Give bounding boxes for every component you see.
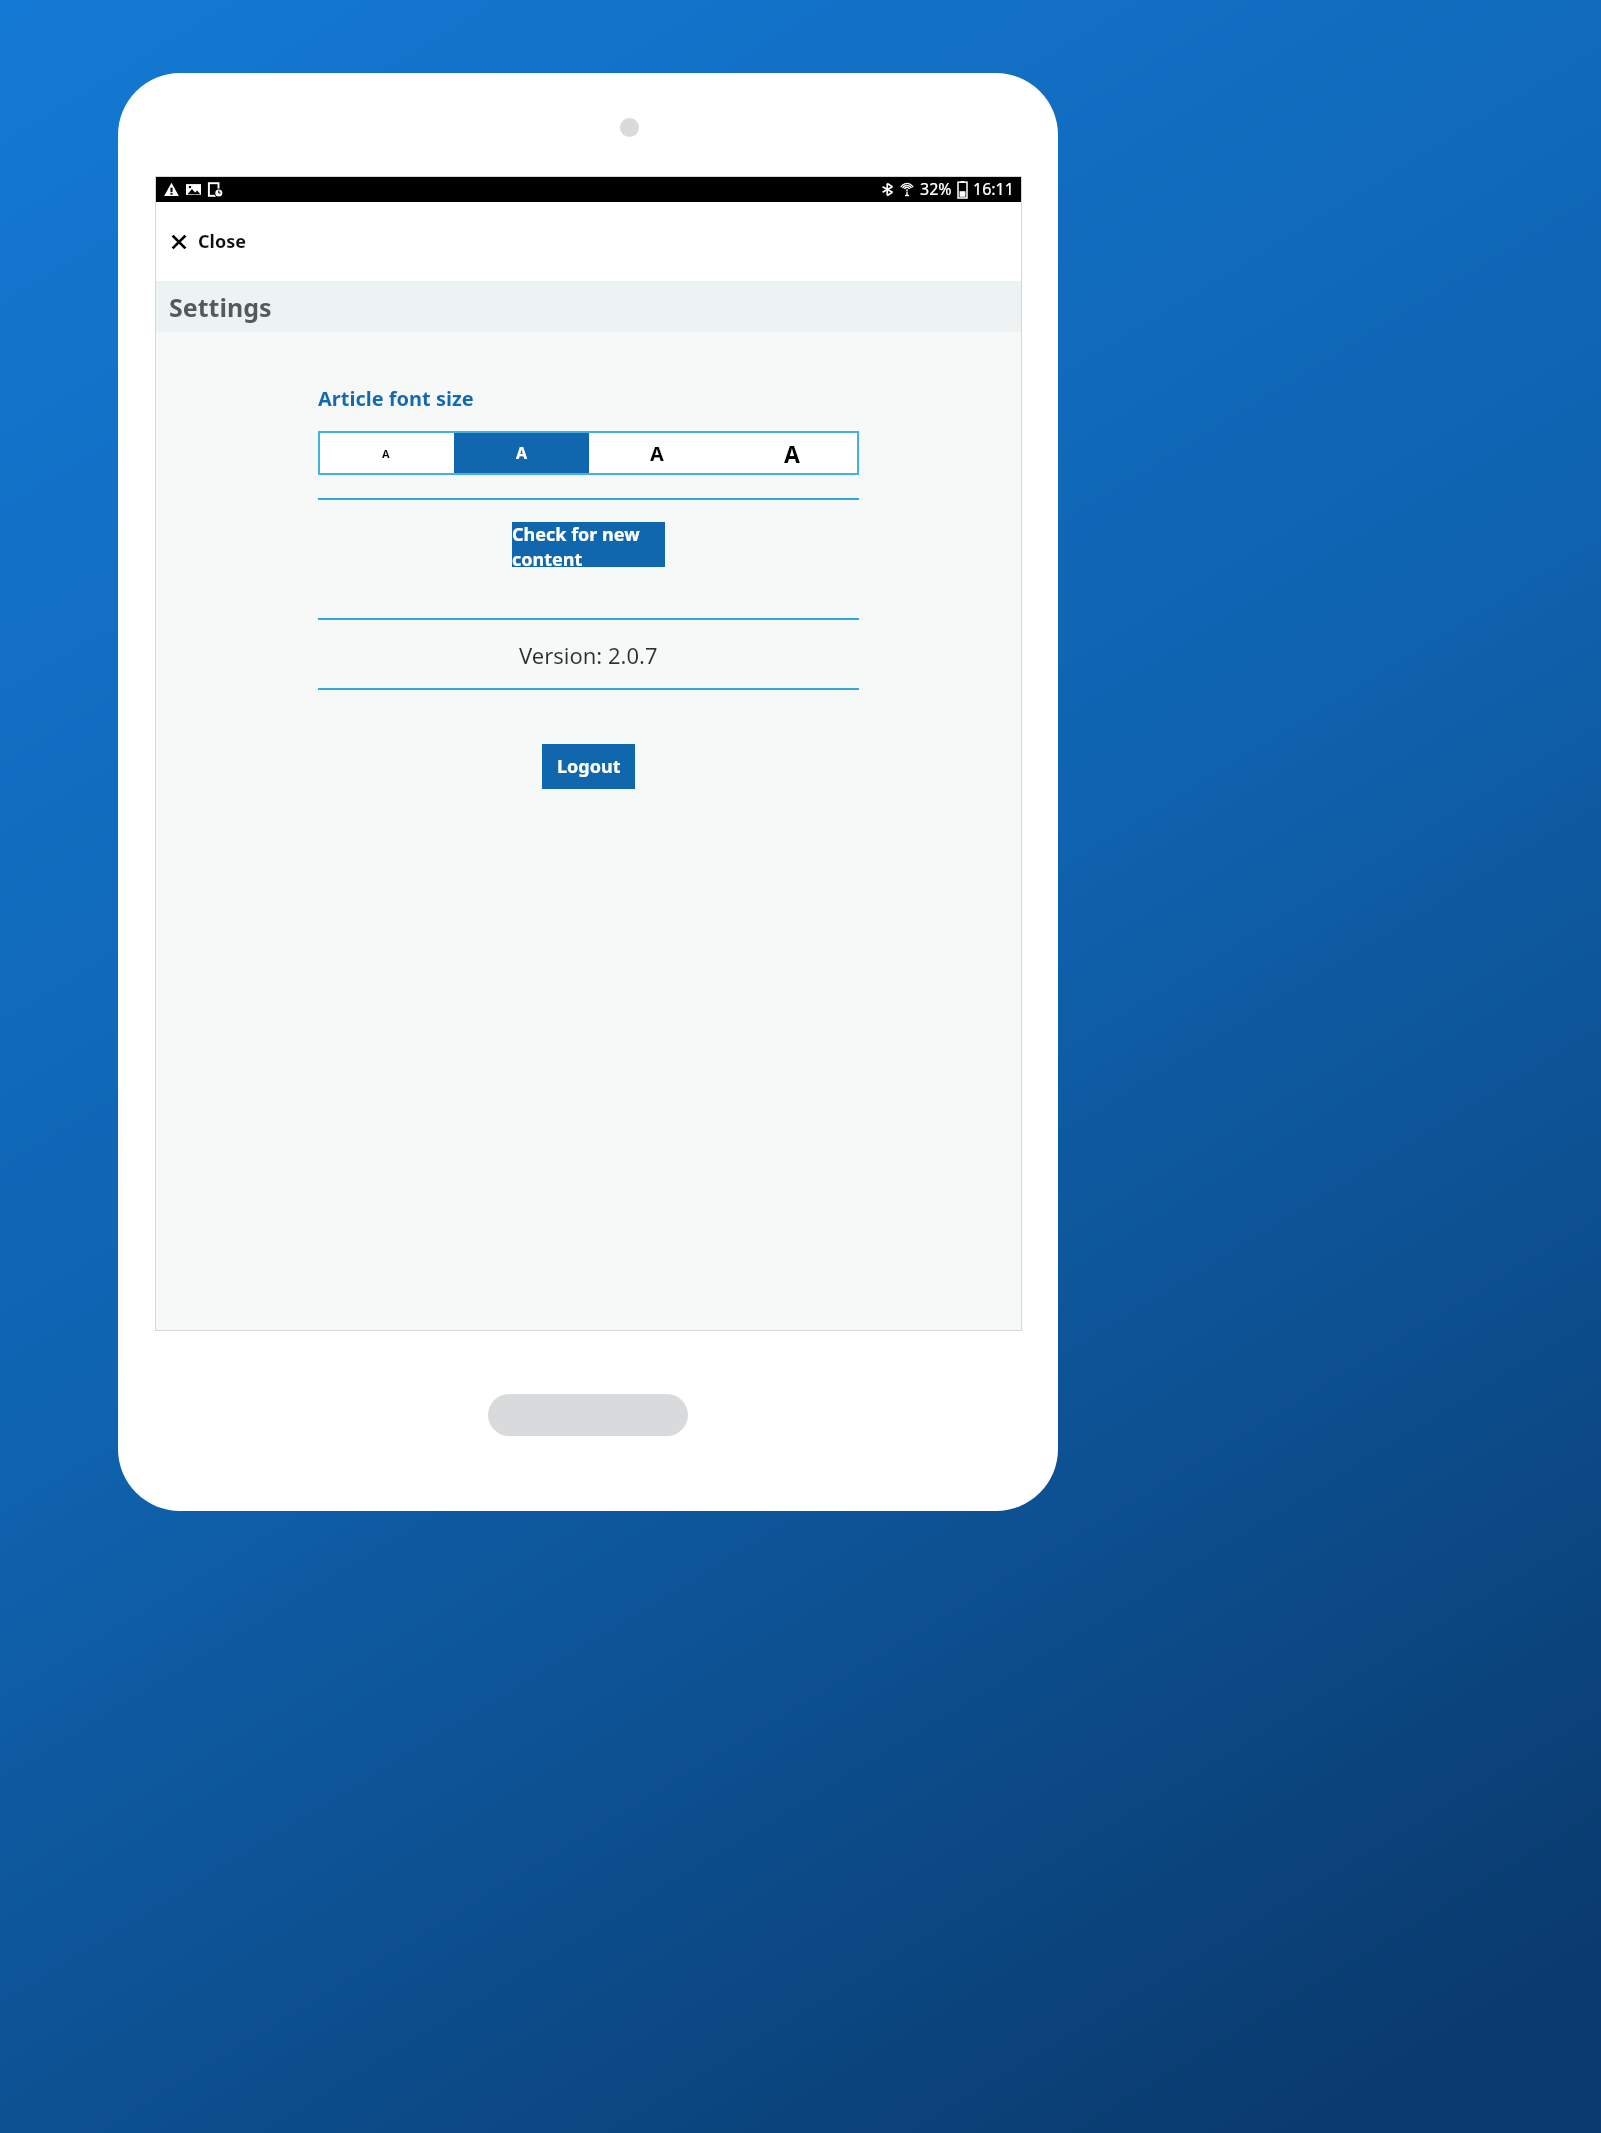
staticText: Check for new content [512,522,665,567]
staticText: A [784,438,800,469]
button[interactable]: A [454,431,589,475]
staticText: Settings [169,290,272,324]
staticText: A [516,442,528,464]
button[interactable]: A [318,431,454,475]
staticText: 16:11 [973,178,1014,200]
staticText: A [650,440,664,467]
staticText: Article font size [318,385,474,412]
button[interactable]: Logout [542,744,635,789]
button[interactable]: A [589,431,724,475]
staticText: Close [198,229,246,254]
staticText: Logout [557,754,621,779]
staticText: Version: 2.0.7 [519,640,658,670]
button[interactable]: Home [488,1394,688,1436]
staticText: A [382,446,390,461]
button[interactable]: Check for new content [512,522,665,567]
button[interactable]: Close [155,202,1022,281]
staticText: 32% [920,178,952,200]
button[interactable]: A [724,431,859,475]
